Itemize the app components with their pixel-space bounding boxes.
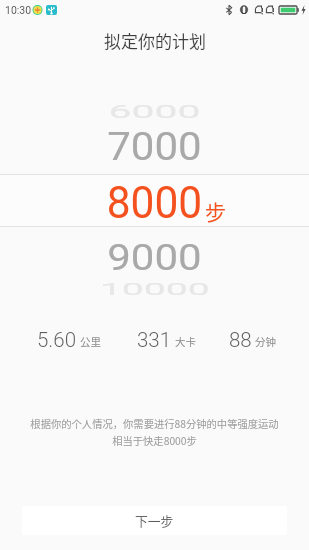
staticText: 5.60 (37, 328, 77, 352)
staticText: 下一步 (135, 511, 174, 530)
button[interactable]: 8000 (0, 175, 309, 226)
button[interactable]: 88 (229, 329, 309, 353)
staticText: 分钟 (255, 334, 276, 349)
button[interactable]: 5.60 (37, 329, 309, 353)
staticText: 公里 (80, 334, 101, 349)
staticText: 大卡 (175, 334, 196, 349)
staticText: 7000 (107, 124, 202, 169)
staticText: 根据你的个人情况，你需要进行88分钟的中等强度运动 相当于快走8000步 (0, 416, 309, 448)
button[interactable]: 331 (137, 329, 309, 353)
button[interactable]: 下一步 (22, 506, 287, 535)
staticText: 6000 (108, 101, 201, 123)
staticText: 331 (137, 328, 172, 352)
staticText: 10:30 (5, 4, 32, 16)
staticText: 步 (205, 196, 226, 226)
staticText: 10000 (100, 281, 210, 299)
staticText: 88 (229, 328, 252, 352)
staticText: 拟定你的计划 (104, 28, 206, 53)
staticText: 9000 (107, 235, 202, 279)
staticText: 8000 (107, 177, 202, 228)
